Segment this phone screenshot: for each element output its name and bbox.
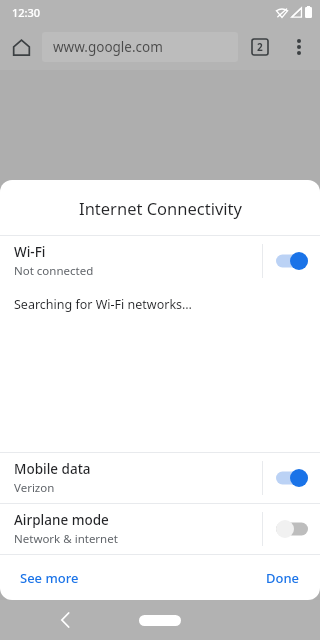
staticText: Verizon: [14, 480, 55, 496]
staticText: Internet Connectivity: [79, 197, 242, 219]
staticText: Done: [266, 569, 300, 587]
button[interactable]: Mobile data: [0, 453, 320, 503]
staticText: 2: [257, 40, 263, 54]
staticText: See more: [20, 569, 79, 587]
button[interactable]: More options: [282, 30, 316, 64]
button[interactable]: Tabs, 2 open: [238, 25, 282, 69]
staticText: Mobile data: [14, 460, 91, 478]
button[interactable]: Airplane mode toggle: [263, 504, 320, 554]
staticText: Searching for Wi-Fi networks…: [14, 296, 192, 313]
staticText: www.google.com: [53, 38, 163, 56]
button[interactable]: Mobile data toggle: [263, 453, 320, 503]
staticText: 12:30: [12, 5, 41, 20]
staticText: Not connected: [14, 263, 94, 279]
button[interactable]: Airplane mode: [0, 504, 320, 554]
button[interactable]: Back: [50, 605, 80, 635]
staticText: Network & internet: [14, 531, 118, 547]
button[interactable]: Home: [139, 615, 181, 626]
button[interactable]: Done: [260, 563, 306, 593]
button[interactable]: Home: [0, 26, 42, 68]
button[interactable]: Wi-Fi: [0, 236, 320, 286]
staticText: Wi-Fi: [14, 243, 46, 261]
staticText: Airplane mode: [14, 511, 109, 529]
button[interactable]: See more: [14, 563, 85, 593]
button[interactable]: Wi-Fi toggle: [263, 236, 320, 286]
button[interactable]: www.google.com: [42, 32, 238, 62]
